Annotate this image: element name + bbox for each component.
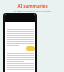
- staticText: An orderly account for what you need: [13, 10, 51, 13]
- button[interactable]: Get started: [26, 46, 35, 51]
- staticText: AI summaries: [17, 3, 48, 9]
